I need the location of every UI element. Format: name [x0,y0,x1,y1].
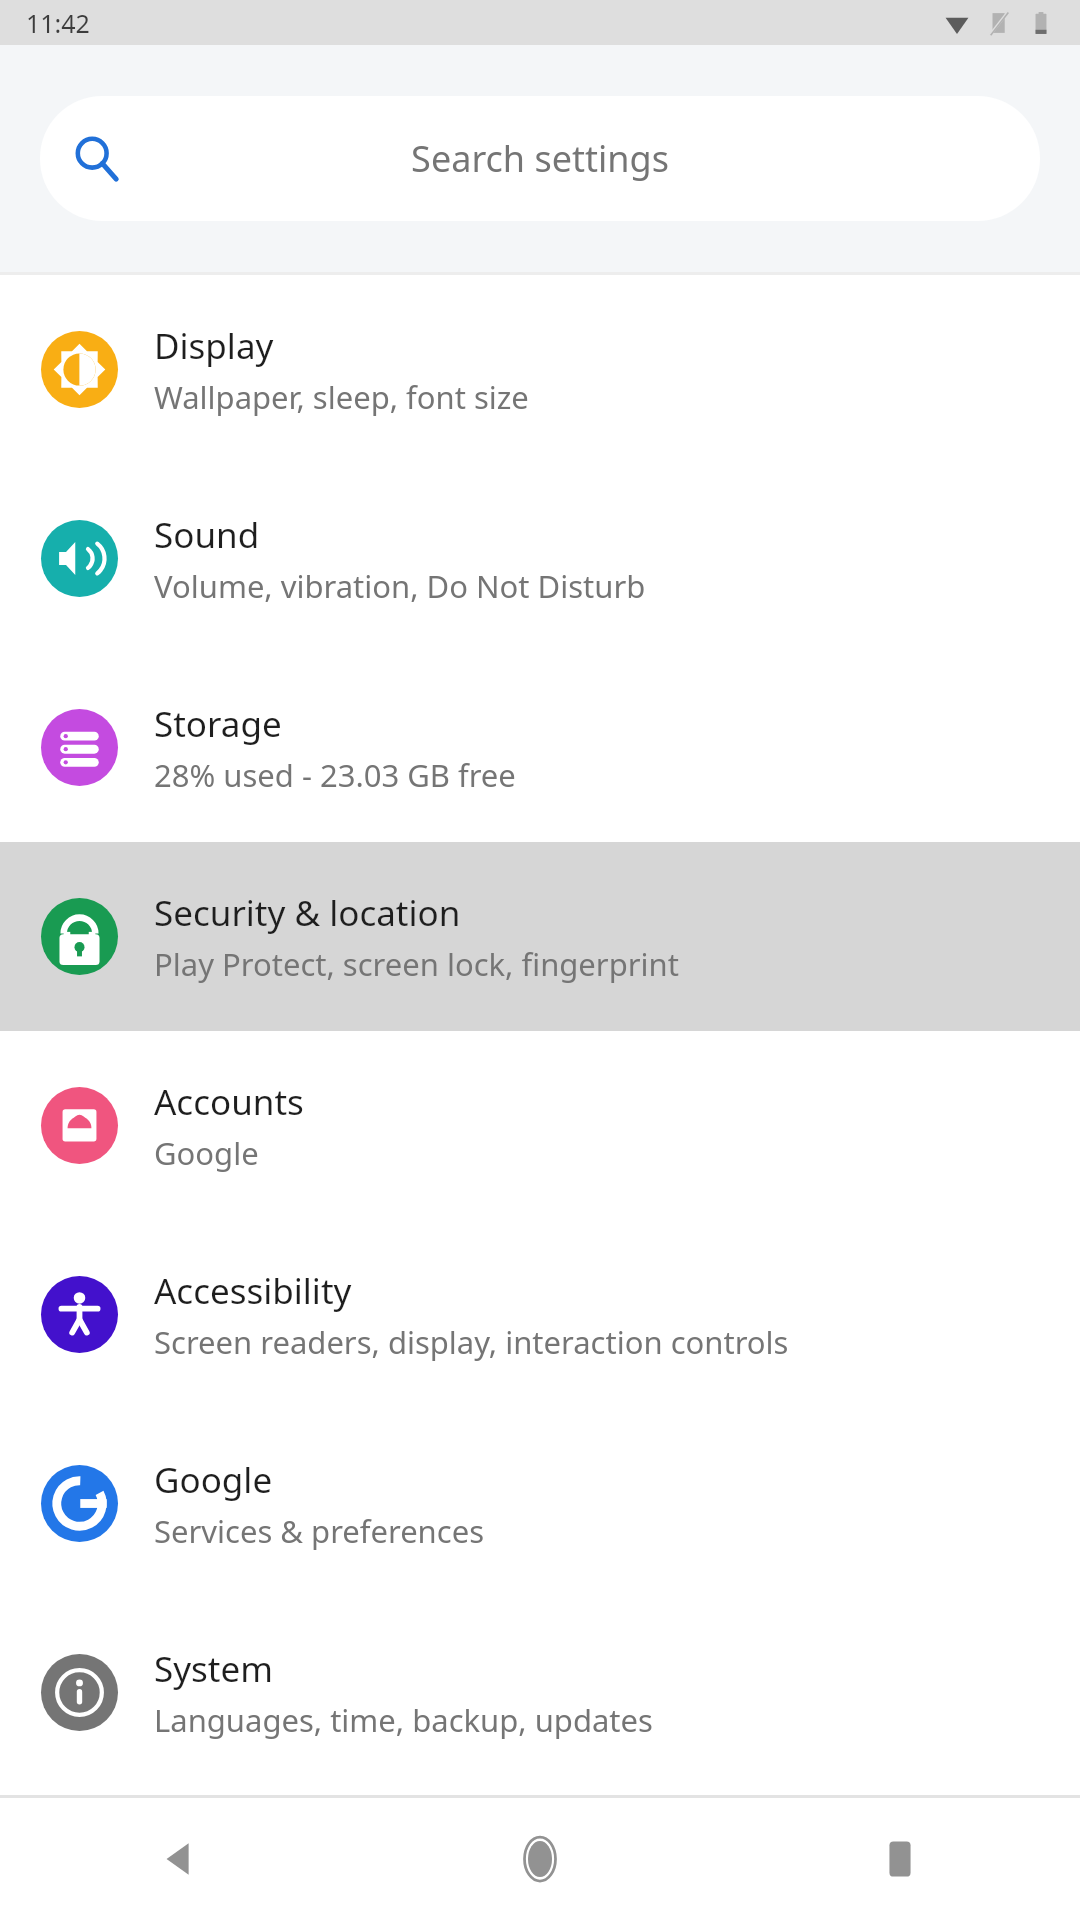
staticText: 28% used - 23.03 GB free [154,754,516,796]
staticText: Screen readers, display, interaction con… [154,1321,789,1363]
button[interactable]: Google [0,1409,1080,1598]
button[interactable]: System [0,1598,1080,1787]
staticText: System [154,1645,273,1693]
staticText: Sound [154,511,260,559]
staticText: Storage [154,700,282,748]
staticText: Services & preferences [154,1510,484,1552]
button[interactable]: Home [360,1798,720,1920]
staticText: Play Protect, screen lock, fingerprint [154,943,679,985]
staticText: Security & location [154,889,461,937]
button[interactable]: Security & location [0,842,1080,1031]
staticText: Search settings [40,134,1040,183]
staticText: Languages, time, backup, updates [154,1699,653,1741]
button[interactable]: Display [0,275,1080,464]
staticText: Accounts [154,1078,304,1126]
staticText: Volume, vibration, Do Not Disturb [154,565,646,607]
button[interactable]: Search settings [40,96,1040,221]
button[interactable]: Accessibility [0,1220,1080,1409]
staticText: Google [154,1456,273,1504]
button[interactable]: Sound [0,464,1080,653]
button[interactable]: Storage [0,653,1080,842]
staticText: Google [154,1132,259,1174]
staticText: 11:42 [26,6,90,40]
staticText: Accessibility [154,1267,352,1315]
staticText: Display [154,322,274,370]
staticText: Wallpaper, sleep, font size [154,376,529,418]
button[interactable]: Back [0,1798,360,1920]
button[interactable]: Accounts [0,1031,1080,1220]
button[interactable]: Recent apps [720,1798,1080,1920]
